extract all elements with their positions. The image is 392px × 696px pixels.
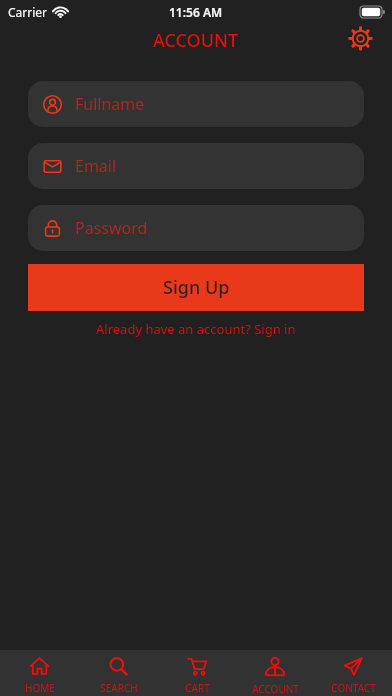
- staticText: ACCOUNT: [153, 28, 239, 53]
- staticText: Password: [75, 217, 148, 239]
- button[interactable]: CONTACT: [314, 650, 392, 696]
- staticText: CART: [185, 681, 210, 695]
- button[interactable]: Fullname: [28, 81, 364, 127]
- button[interactable]: Already have an account? Sign in: [0, 320, 392, 338]
- button[interactable]: CART: [158, 650, 236, 696]
- button[interactable]: Email: [28, 143, 364, 189]
- staticText: HOME: [25, 681, 55, 695]
- staticText: Email: [75, 155, 117, 177]
- button[interactable]: HOME: [0, 650, 79, 696]
- staticText: SEARCH: [100, 681, 138, 695]
- button[interactable]: ACCOUNT: [236, 650, 314, 696]
- button[interactable]: Password: [28, 205, 364, 251]
- staticText: Already have an account? Sign in: [96, 320, 296, 338]
- button[interactable]: SEARCH: [79, 650, 158, 696]
- staticText: Fullname: [75, 93, 145, 115]
- button[interactable]: Sign Up: [28, 264, 364, 311]
- staticText: 11:56 AM: [169, 4, 223, 20]
- staticText: CONTACT: [331, 681, 376, 695]
- staticText: Carrier: [8, 4, 48, 20]
- button[interactable]: [347, 25, 373, 51]
- staticText: Sign Up: [163, 275, 230, 300]
- staticText: ACCOUNT: [252, 682, 299, 696]
